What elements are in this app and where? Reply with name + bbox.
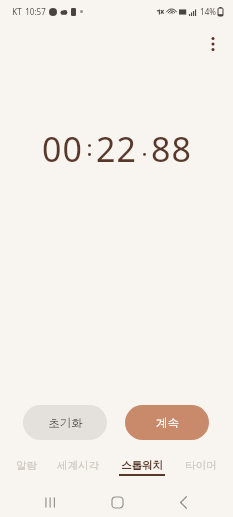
- button[interactable]: Home: [100, 487, 134, 517]
- staticText: KT: [12, 6, 22, 17]
- staticText: 세계시각: [57, 459, 99, 472]
- button[interactable]: Recent apps: [33, 487, 67, 517]
- staticText: 88: [151, 126, 192, 172]
- button[interactable]: 스톱워치: [115, 458, 169, 477]
- staticText: 10:57: [25, 6, 46, 17]
- staticText: 계속: [156, 416, 179, 430]
- staticText: 스톱워치: [121, 459, 163, 472]
- button[interactable]: Back: [166, 487, 200, 517]
- button[interactable]: More options: [199, 30, 227, 58]
- staticText: 타이머: [185, 459, 217, 472]
- button[interactable]: 계속: [125, 405, 209, 440]
- staticText: 22: [96, 126, 137, 172]
- button[interactable]: 초기화: [23, 405, 107, 440]
- button[interactable]: 타이머: [181, 458, 221, 477]
- button[interactable]: 알람: [12, 458, 41, 477]
- staticText: 알람: [16, 459, 37, 472]
- staticText: 14%: [200, 6, 216, 17]
- staticText: 초기화: [48, 416, 83, 430]
- staticText: 00: [42, 126, 83, 172]
- button[interactable]: 세계시각: [53, 458, 103, 477]
